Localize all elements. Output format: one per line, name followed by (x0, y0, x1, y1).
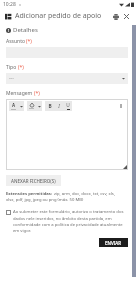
staticText: Extensões permitidas: (6, 191, 54, 197)
button[interactable]: Ao submeter este formulário, autorizo o … (6, 209, 128, 233)
staticText: U (66, 102, 70, 109)
staticText: (*) (18, 64, 24, 71)
button[interactable]: I (54, 101, 63, 111)
button[interactable]: More options (117, 102, 125, 110)
staticText: ANEXAR FICHEIRO(S) (11, 178, 56, 184)
button[interactable]: Highlight color (27, 101, 36, 111)
staticText: --- (9, 75, 14, 82)
staticText: 10:28 (3, 1, 16, 8)
staticText: ENVIAR (105, 240, 122, 246)
staticText: A (12, 102, 16, 108)
staticText: zip, arm, doc, docx, txt, csv, xls, (54, 191, 115, 197)
staticText: I (58, 103, 60, 110)
staticText: Assunto (6, 38, 25, 45)
button[interactable]: B (45, 101, 54, 111)
staticText: Ao submeter este formulário, autorizo o … (13, 209, 128, 233)
button[interactable]: U (63, 101, 72, 111)
button[interactable]: Close (121, 11, 132, 22)
button[interactable]: ENVIAR (99, 238, 128, 247)
staticText: Detalhes (13, 26, 38, 34)
staticText: Mensagem (6, 90, 33, 97)
button[interactable]: --- (6, 73, 128, 84)
staticText: Adicionar pedido de apoio (15, 11, 102, 21)
button[interactable]: Choose color (18, 101, 24, 111)
button[interactable]: ANEXAR FICHEIRO(S) (6, 175, 61, 186)
staticText: (*) (26, 38, 32, 45)
staticText: B (48, 103, 52, 110)
staticText: Tipo (6, 64, 17, 71)
button[interactable]: Text color (9, 101, 18, 111)
staticText: (*) (34, 90, 40, 97)
button[interactable]: Print (110, 11, 121, 22)
button[interactable]: Choose highlight (36, 101, 42, 111)
button[interactable] (6, 113, 128, 170)
staticText: xlsx, pdf, jpg, jpeg ou png (máx. 50 MB) (6, 197, 84, 203)
